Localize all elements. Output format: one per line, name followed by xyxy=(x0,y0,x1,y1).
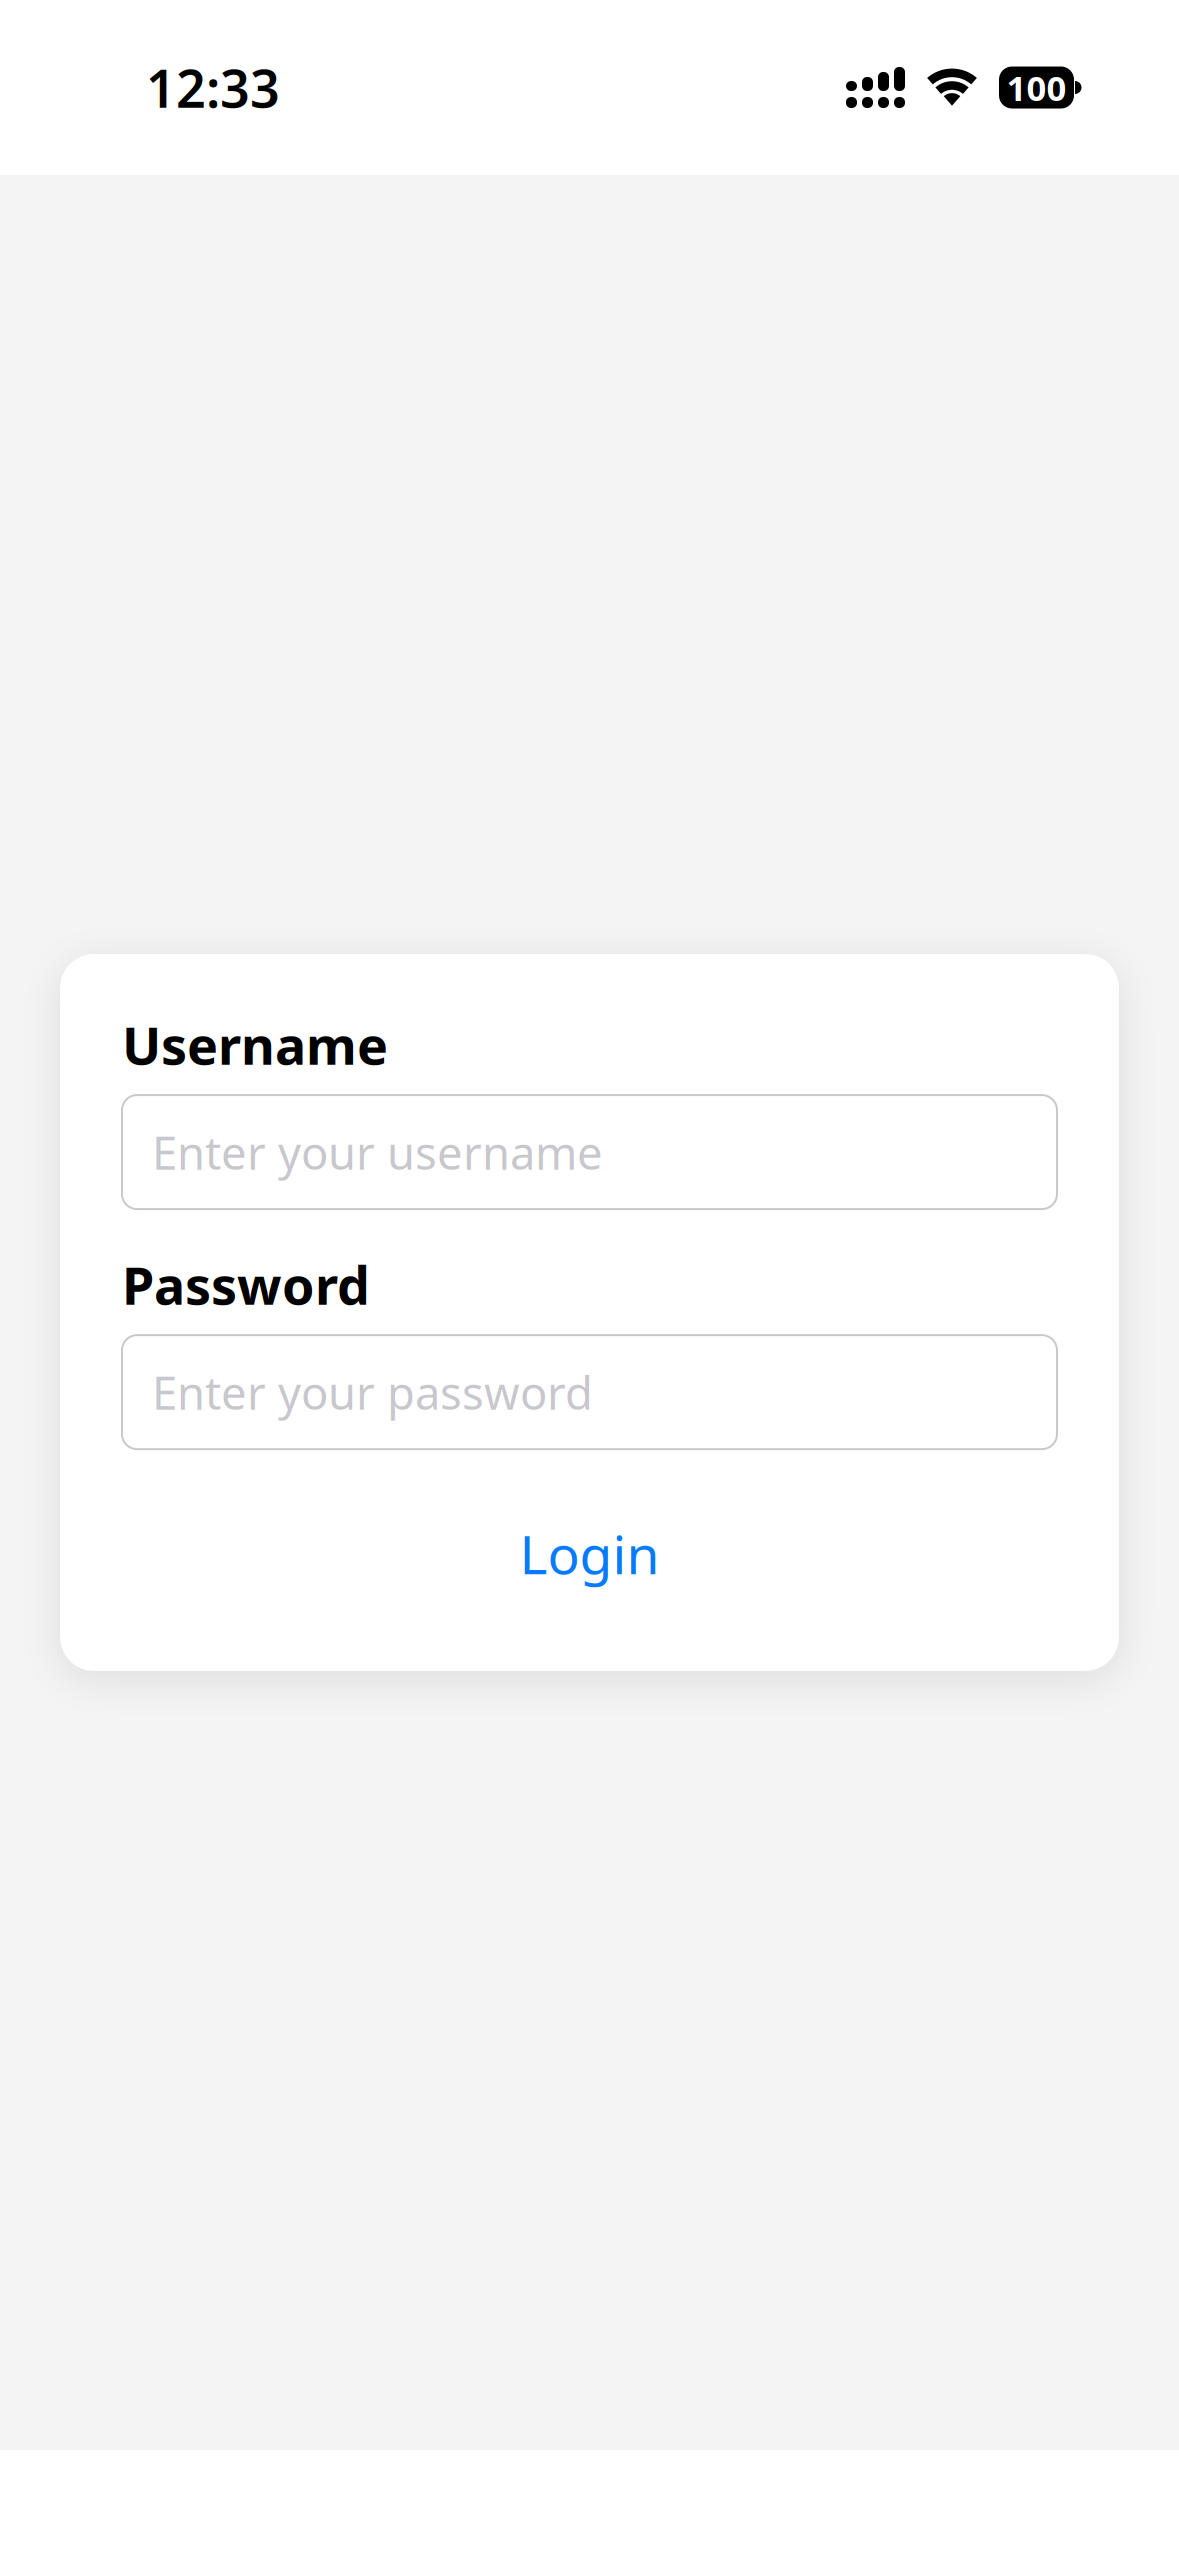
staticText: Password xyxy=(122,1250,370,1319)
button[interactable]: Enter your password xyxy=(122,1335,1057,1449)
staticText: 12:33 xyxy=(146,53,280,122)
staticText: Enter your password xyxy=(152,1362,593,1422)
staticText: Username xyxy=(122,1010,388,1079)
button[interactable]: Login xyxy=(519,1518,659,1589)
staticText: Login xyxy=(519,1518,659,1589)
button[interactable]: Enter your username xyxy=(122,1095,1057,1209)
staticText: Enter your username xyxy=(152,1122,603,1182)
staticText: 100 xyxy=(1006,64,1066,110)
